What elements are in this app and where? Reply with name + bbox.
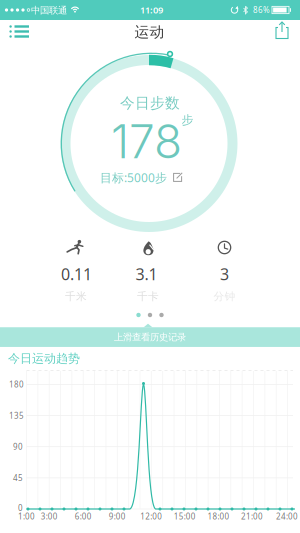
button[interactable]: 目标:5000步 <box>100 169 183 185</box>
button[interactable]: 菜单 <box>4 17 40 45</box>
staticText: 运动 <box>134 23 164 41</box>
staticText: 3:00 <box>41 511 58 522</box>
staticText: 11:09 <box>140 4 163 16</box>
button[interactable]: 分享 <box>266 17 296 45</box>
staticText: 86% <box>253 5 270 15</box>
staticText: 178 <box>111 114 182 169</box>
staticText: 目标:5000步 <box>100 169 167 185</box>
staticText: 千米 <box>65 290 87 303</box>
button[interactable]: 上滑查看历史记录 <box>0 327 300 347</box>
staticText: 6:00 <box>75 511 92 522</box>
staticText: 45 <box>13 473 23 483</box>
staticText: 18:00 <box>207 511 229 522</box>
staticText: 分钟 <box>213 290 235 303</box>
staticText: 15:00 <box>174 511 196 522</box>
staticText: 3 <box>220 263 229 285</box>
staticText: 今日运动趋势 <box>8 351 80 366</box>
staticText: 12:00 <box>140 511 162 522</box>
staticText: 135 <box>9 410 24 421</box>
staticText: 3.1 <box>135 263 157 285</box>
staticText: 步 <box>181 113 193 127</box>
staticText: 今日步数 <box>120 94 180 112</box>
staticText: 9:00 <box>109 511 126 522</box>
staticText: 24:00 <box>276 511 298 522</box>
staticText: 中国联通 <box>31 5 67 16</box>
staticText: 90 <box>13 441 23 452</box>
staticText: 0.11 <box>61 263 92 285</box>
staticText: 千卡 <box>137 290 159 303</box>
staticText: 0 <box>18 503 23 513</box>
staticText: 180 <box>9 379 24 390</box>
staticText: 21:00 <box>241 511 263 522</box>
staticText: 上滑查看历史记录 <box>114 331 186 343</box>
staticText: 1:00 <box>18 511 35 522</box>
